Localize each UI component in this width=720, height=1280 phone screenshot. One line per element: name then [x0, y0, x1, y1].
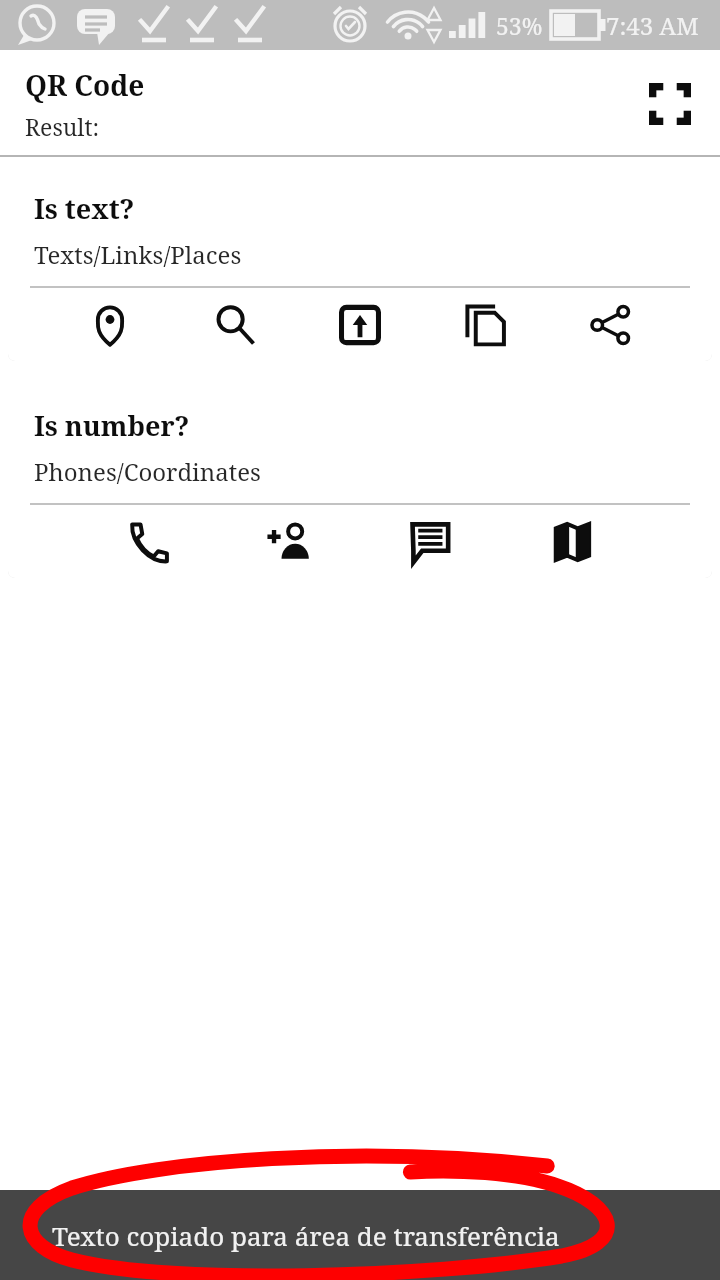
staticText: Texts/Links/Places — [34, 238, 242, 271]
button[interactable]: Open map — [537, 507, 607, 577]
button[interactable]: Send SMS — [396, 507, 466, 577]
button[interactable]: Copy text — [450, 290, 520, 360]
button[interactable]: Search — [200, 290, 270, 360]
staticText: 7:43 AM — [606, 9, 699, 42]
button[interactable]: Call — [113, 507, 183, 577]
staticText: Phones/Coordinates — [34, 455, 261, 488]
staticText: Texto copiado para área de transferência — [52, 1218, 560, 1253]
button[interactable]: Scan QR code — [636, 70, 704, 138]
staticText: Result: — [25, 111, 100, 142]
staticText: QR Code — [25, 66, 145, 104]
staticText: Is text? — [34, 190, 135, 227]
button[interactable]: Share — [575, 290, 645, 360]
button[interactable]: Show on map — [75, 290, 145, 360]
button[interactable]: Texto copiado para área de transferência — [0, 1190, 720, 1280]
button[interactable]: Open link — [325, 290, 395, 360]
staticText: 53% — [496, 10, 543, 41]
button[interactable]: Add contact — [254, 507, 324, 577]
staticText: Is number? — [34, 407, 190, 444]
